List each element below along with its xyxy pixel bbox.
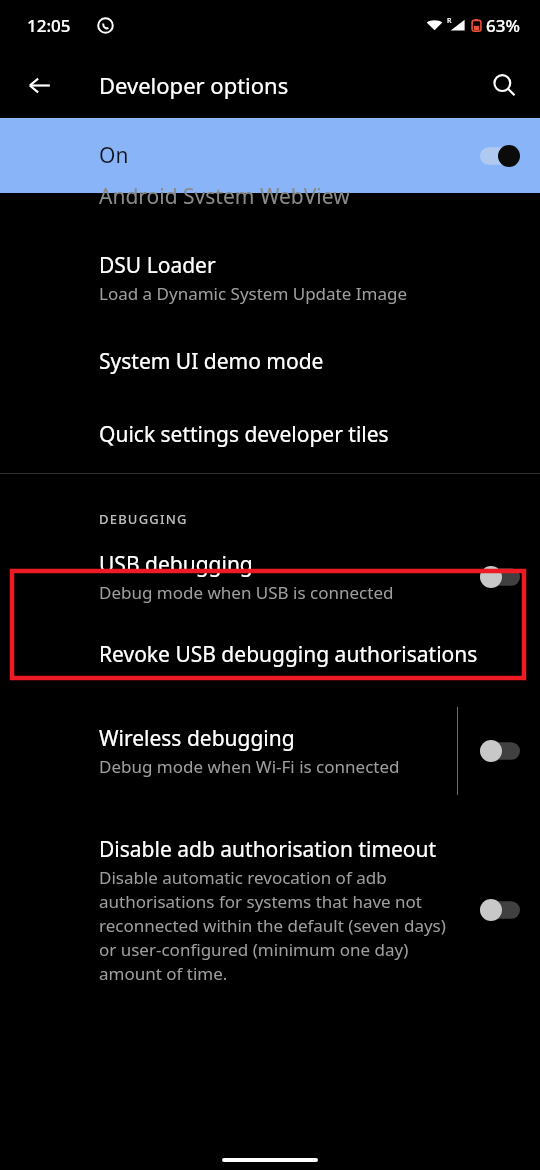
button[interactable]: Search	[482, 63, 526, 107]
staticText: DSU Loader	[99, 251, 216, 280]
staticText: Developer options	[99, 70, 289, 100]
staticText: On	[99, 141, 129, 170]
staticText: Quick settings developer tiles	[99, 420, 389, 449]
staticText: Disable automatic revocation of adb auth…	[99, 866, 464, 985]
staticText: Debug mode when USB is connected	[99, 581, 394, 604]
staticText: USB debugging	[99, 550, 253, 579]
staticText: Revoke USB debugging authorisations	[99, 640, 478, 669]
staticText: 12:05	[27, 14, 71, 37]
button[interactable]: On	[0, 118, 540, 193]
button[interactable]: USB debugging	[0, 528, 540, 620]
staticText: Disable adb authorisation timeout	[99, 835, 437, 864]
button[interactable]: Wireless debugging	[0, 689, 540, 813]
button[interactable]: USB debugging	[480, 566, 520, 588]
button[interactable]: Android System WebView	[0, 193, 540, 215]
button[interactable]: DSU Loader	[0, 215, 540, 325]
staticText: Wireless debugging	[99, 724, 295, 753]
button[interactable]: Disable adb authorisation timeout	[480, 899, 520, 921]
staticText: DEBUGGING	[99, 510, 188, 528]
button[interactable]: Disable adb authorisation timeout	[0, 813, 540, 1003]
staticText: Debug mode when Wi-Fi is connected	[99, 755, 400, 778]
staticText: Android System WebView	[99, 182, 350, 204]
staticText: R	[447, 16, 452, 26]
button[interactable]: System UI demo mode	[0, 325, 540, 398]
button[interactable]: Revoke USB debugging authorisations	[0, 620, 540, 689]
button[interactable]: Wireless debugging	[480, 740, 520, 762]
staticText: System UI demo mode	[99, 347, 324, 376]
button[interactable]: Quick settings developer tiles	[0, 398, 540, 473]
staticText: Load a Dynamic System Update Image	[99, 282, 407, 305]
button[interactable]: Back	[17, 63, 61, 107]
staticText: 63%	[486, 14, 520, 37]
